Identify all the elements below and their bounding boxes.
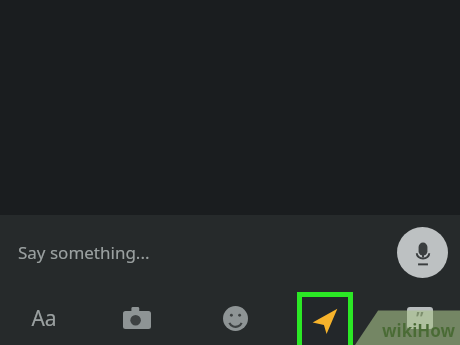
staticText: ” [416, 307, 424, 329]
button[interactable]: Send location [297, 292, 353, 345]
staticText: Say something... [18, 241, 150, 264]
button[interactable]: Voice message [397, 227, 448, 278]
staticText: wikiHow [382, 319, 456, 342]
button[interactable]: Emoji [208, 291, 262, 345]
button[interactable]: Quote [394, 291, 446, 345]
button[interactable]: Camera [110, 291, 164, 345]
staticText: Aa [31, 304, 57, 333]
button[interactable]: Aa [16, 291, 72, 345]
button[interactable]: Say something... [0, 221, 460, 283]
